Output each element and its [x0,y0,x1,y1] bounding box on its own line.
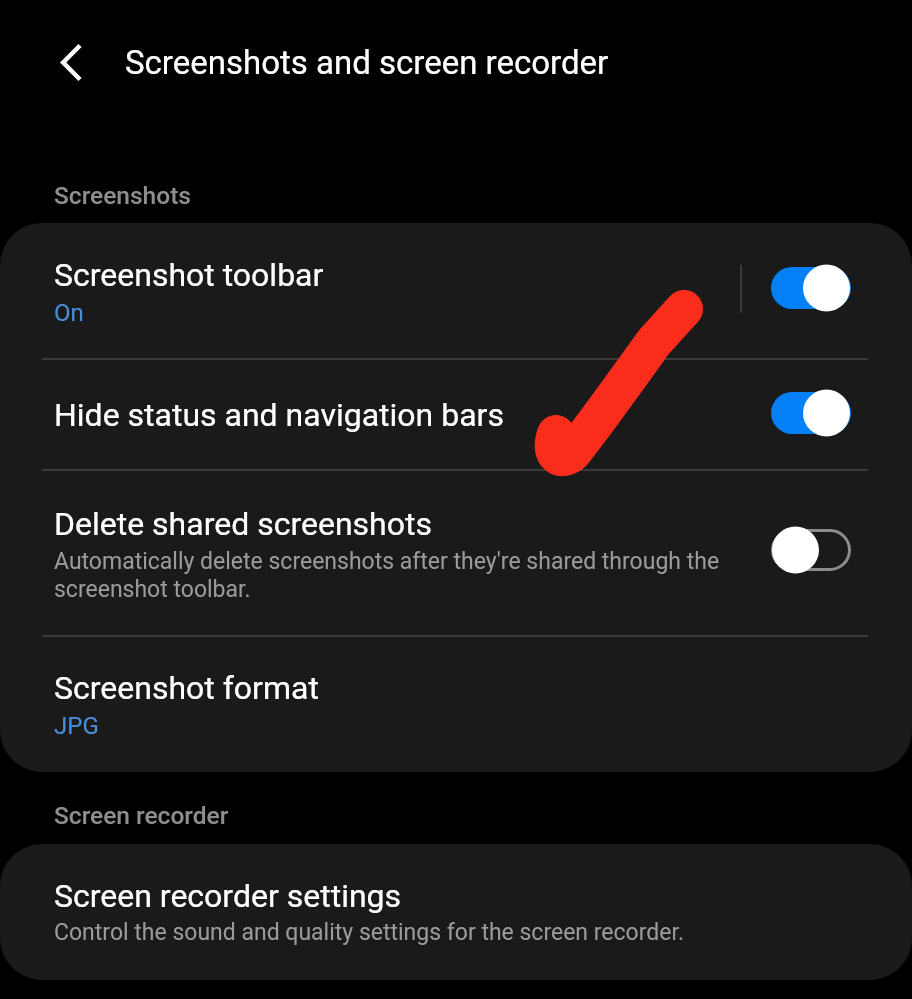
button[interactable]: Hide status and navigation bars [0,360,912,469]
staticText: Screen recorder [54,801,229,830]
button[interactable]: Screenshot toolbar, on [760,256,866,320]
button[interactable]: Delete shared screenshots [0,471,912,635]
staticText: JPG [54,712,99,740]
button[interactable]: Screen recorder settings [0,844,912,980]
staticText: Screen recorder settings [54,877,402,915]
staticText: Screenshots [54,181,191,210]
button[interactable]: Screenshot format [0,637,912,772]
staticText: Automatically delete screenshots after t… [54,548,720,603]
staticText: Screenshot format [54,669,319,707]
button[interactable]: Screenshot toolbar [0,223,912,358]
staticText: Delete shared screenshots [54,505,432,543]
staticText: On [54,299,84,327]
button[interactable]: Delete shared screenshots, off [760,518,866,582]
button[interactable]: Hide status and navigation bars, on [760,381,866,445]
staticText: Hide status and navigation bars [54,396,504,434]
staticText: Control the sound and quality settings f… [54,919,684,946]
staticText: Screenshot toolbar [54,256,324,294]
staticText: Screenshots and screen recorder [125,43,609,82]
button[interactable]: Navigate up [34,26,106,98]
